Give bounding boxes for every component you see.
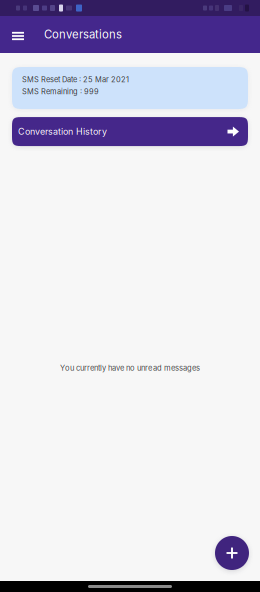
button[interactable]: New message xyxy=(215,536,249,570)
staticText: Conversation History xyxy=(18,126,107,137)
button[interactable]: Menu xyxy=(0,16,36,53)
staticText: SMS Reset Date : 25 Mar 2021 xyxy=(22,75,129,84)
staticText: Conversations xyxy=(44,28,122,41)
staticText: You currently have no unread messages xyxy=(60,363,200,373)
staticText: SMS Remaining : 999 xyxy=(22,87,99,96)
button[interactable]: Conversation History xyxy=(12,117,248,146)
